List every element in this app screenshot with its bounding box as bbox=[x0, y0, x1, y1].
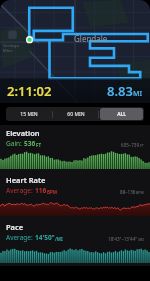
staticText: Elevation bbox=[6, 128, 40, 138]
button[interactable]: Elevation bbox=[0, 125, 150, 172]
staticText: Glendale bbox=[74, 33, 108, 44]
button[interactable]: Route map bbox=[0, 0, 150, 103]
staticText: 605–739 bbox=[121, 142, 140, 148]
staticText: 18'43"–13'44" bbox=[108, 236, 138, 242]
staticText: FT bbox=[36, 142, 42, 148]
staticText: 15 MIN bbox=[20, 111, 38, 118]
staticText: 88–136 bbox=[120, 189, 136, 195]
staticText: MI bbox=[133, 89, 143, 99]
button[interactable]: ALL bbox=[100, 108, 143, 120]
staticText: 116 bbox=[35, 186, 47, 195]
staticText: 2:11:02 bbox=[7, 82, 52, 100]
staticText: Gain: bbox=[6, 139, 24, 148]
button[interactable]: 60 MIN bbox=[54, 108, 97, 120]
button[interactable]: 15 MIN bbox=[7, 108, 51, 120]
staticText: Heart Rate bbox=[6, 175, 46, 185]
staticText: 536 bbox=[24, 139, 36, 148]
button[interactable]: Heart Rate bbox=[0, 172, 150, 219]
staticText: BPM bbox=[47, 189, 58, 195]
staticText: Verdugo Mtns bbox=[3, 43, 19, 53]
staticText: FT bbox=[140, 143, 144, 148]
staticText: /MI bbox=[138, 237, 144, 242]
staticText: Average: bbox=[6, 186, 35, 195]
staticText: Average: bbox=[6, 233, 35, 242]
staticText: 8.83 bbox=[107, 82, 133, 100]
button[interactable]: Pace bbox=[0, 219, 150, 266]
staticText: 14'50" bbox=[35, 233, 55, 242]
staticText: /MI bbox=[55, 236, 63, 242]
staticText: Pace bbox=[6, 222, 24, 232]
staticText: 60 MIN bbox=[67, 111, 85, 118]
staticText: ALL bbox=[117, 111, 126, 118]
staticText: BPM bbox=[136, 190, 144, 195]
